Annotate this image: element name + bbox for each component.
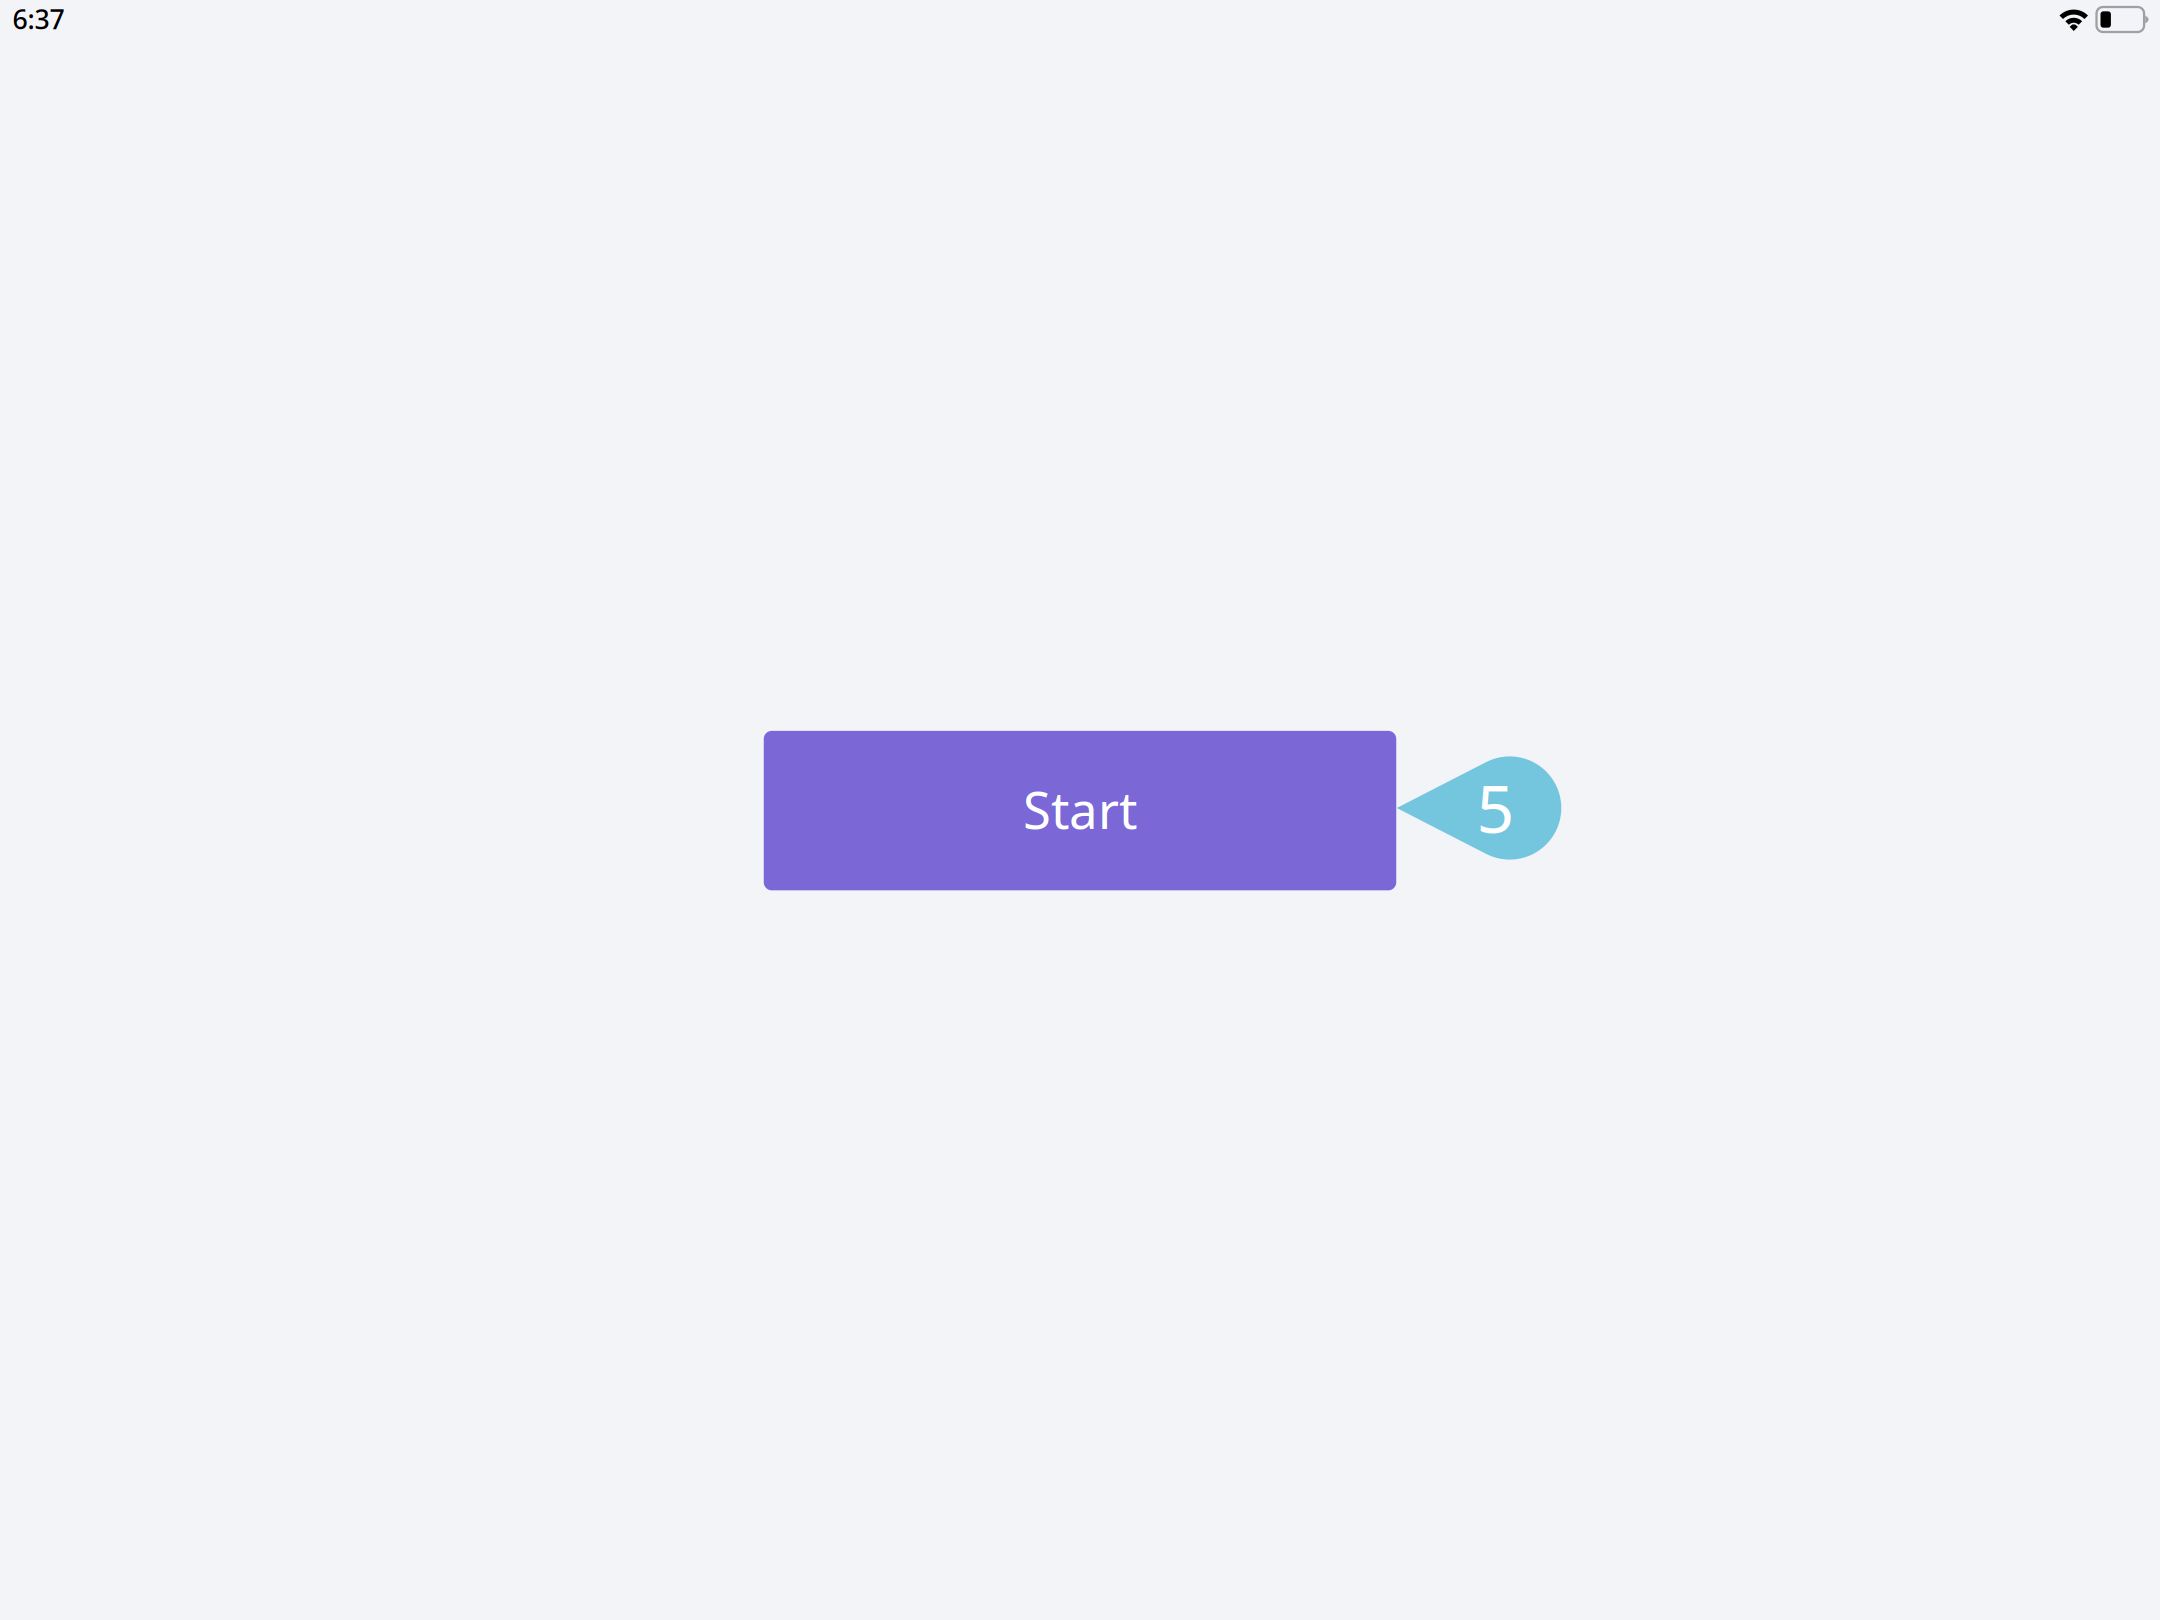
button[interactable]: Start bbox=[764, 731, 1396, 890]
staticText: 6:37 bbox=[12, 1, 64, 37]
staticText: 5 bbox=[1476, 763, 1514, 852]
staticText: Start bbox=[1023, 775, 1137, 844]
